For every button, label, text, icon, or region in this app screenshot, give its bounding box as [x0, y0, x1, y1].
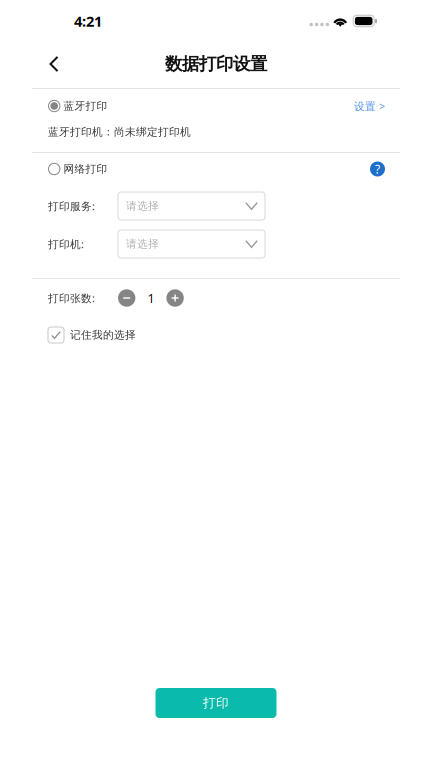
staticText: 请选择: [126, 237, 159, 251]
staticText: 设置 >: [354, 99, 385, 113]
button[interactable]: Increase copies: [166, 289, 184, 307]
staticText: 蓝牙打印: [63, 99, 107, 113]
staticText: 1: [147, 289, 154, 307]
staticText: 4:21: [74, 11, 102, 31]
button[interactable]: 设置 >: [354, 91, 385, 121]
staticText: 请选择: [126, 199, 159, 213]
staticText: 数据打印设置: [165, 53, 267, 75]
staticText: 网络打印: [63, 162, 107, 176]
staticText: ?: [375, 161, 380, 177]
button[interactable]: 网络打印: [48, 155, 107, 183]
button[interactable]: 记住我的选择: [0, 323, 432, 347]
button[interactable]: Help: [370, 155, 385, 183]
button[interactable]: 请选择: [118, 230, 265, 258]
button[interactable]: 打印: [155, 688, 276, 718]
staticText: 蓝牙打印机：尚未绑定打印机: [48, 125, 191, 139]
staticText: 打印张数:: [48, 291, 95, 305]
button[interactable]: Back: [34, 42, 74, 86]
button[interactable]: 请选择: [118, 192, 265, 220]
staticText: 记住我的选择: [70, 328, 136, 342]
button[interactable]: 蓝牙打印: [48, 91, 107, 121]
staticText: 打印: [203, 695, 229, 711]
button[interactable]: Decrease copies: [118, 289, 135, 307]
staticText: 打印服务:: [48, 199, 95, 213]
staticText: 打印机:: [48, 237, 84, 251]
